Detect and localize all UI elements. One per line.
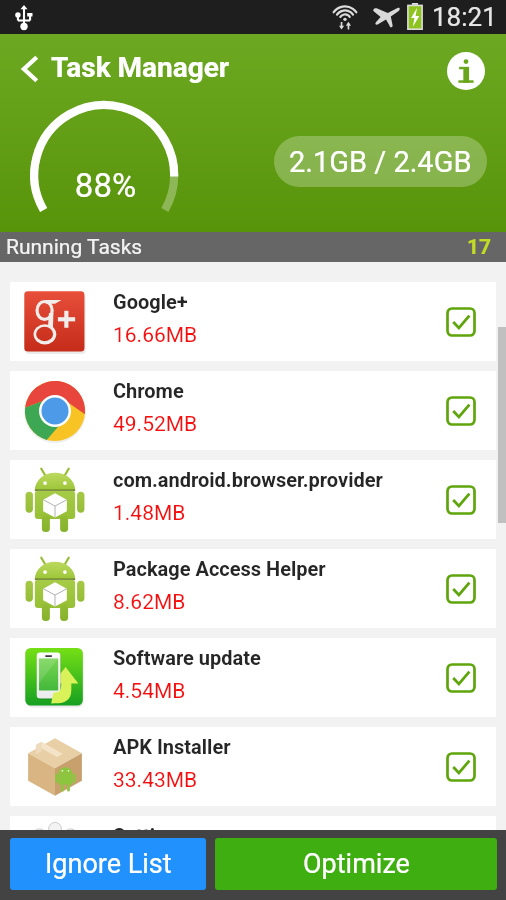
staticText: 17 xyxy=(467,235,492,260)
staticText: Task Manager xyxy=(51,51,230,84)
staticText: 33.43MB xyxy=(113,768,198,793)
button[interactable]: Settings xyxy=(10,816,496,895)
staticText: com.android.browser.provider xyxy=(113,468,383,491)
button[interactable]: Chrome xyxy=(10,371,496,450)
staticText: 49.52MB xyxy=(113,412,198,437)
staticText: Optimize xyxy=(303,848,410,880)
button[interactable]: APK Installer xyxy=(10,727,496,806)
staticText: Ignore List xyxy=(45,848,172,880)
staticText: Settings xyxy=(113,824,188,847)
button[interactable]: Select Package Access Helper xyxy=(438,566,484,612)
staticText: 8.62MB xyxy=(113,590,186,615)
staticText: Running Tasks xyxy=(6,235,143,260)
button[interactable]: Select Chrome xyxy=(438,388,484,434)
button[interactable]: Select APK Installer xyxy=(438,744,484,790)
staticText: 16.66MB xyxy=(113,323,198,348)
button[interactable]: Software update xyxy=(10,638,496,717)
button[interactable]: Optimize xyxy=(215,838,497,890)
staticText: 2.1GB / 2.4GB xyxy=(289,145,472,179)
staticText: Software update xyxy=(113,646,261,669)
button[interactable]: Ignore List xyxy=(10,838,206,890)
button[interactable]: Select Settings xyxy=(438,833,484,879)
staticText: 4.54MB xyxy=(113,679,186,704)
staticText: APK Installer xyxy=(113,735,231,758)
button[interactable]: Select Software update xyxy=(438,655,484,701)
button[interactable]: Google+ xyxy=(10,282,496,361)
button[interactable]: 2.1GB / 2.4GB xyxy=(274,136,487,187)
staticText: 1.48MB xyxy=(113,501,186,526)
staticText: Google+ xyxy=(113,290,188,313)
button[interactable]: Back xyxy=(6,45,54,93)
staticText: Package Access Helper xyxy=(113,557,326,580)
staticText: 88% xyxy=(45,166,166,205)
staticText: 18:21 xyxy=(432,2,497,32)
staticText: Chrome xyxy=(113,379,184,402)
button[interactable]: Select com.android.browser.provider xyxy=(438,477,484,523)
button[interactable]: Select Google+ xyxy=(438,299,484,345)
button[interactable]: Info xyxy=(442,47,490,95)
button[interactable]: Package Access Helper xyxy=(10,549,496,628)
button[interactable]: com.android.browser.provider xyxy=(10,460,496,539)
staticText: 12.03MB xyxy=(113,857,198,882)
